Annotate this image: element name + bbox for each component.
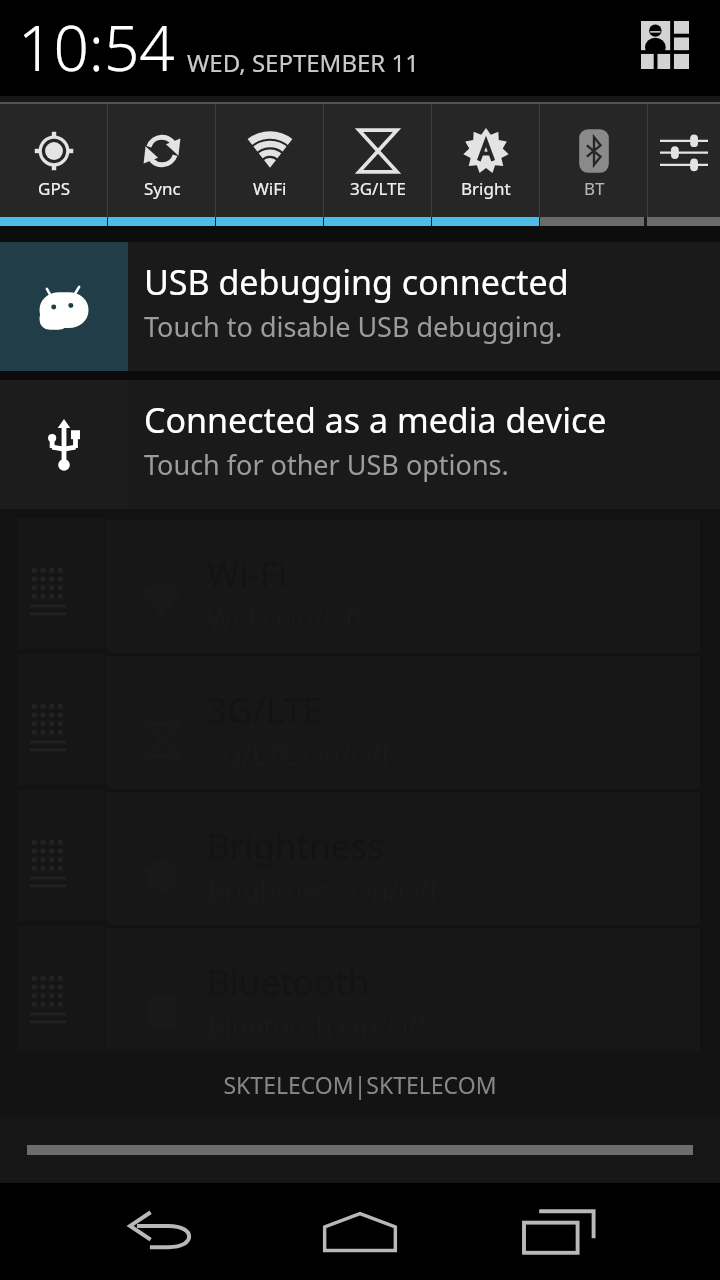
staticText: SKTELECOM|SKTELECOM [223,1069,497,1100]
staticText: Bright [461,177,511,200]
staticText: USB debugging connected [144,259,569,305]
button[interactable]: Connected as a media device [0,380,720,509]
staticText: WiFi [253,177,287,200]
button[interactable]: WiFi [216,104,324,217]
button[interactable]: Settings [648,104,720,217]
button[interactable]: GPS [0,104,108,217]
button[interactable]: USB debugging connected [0,242,720,371]
button[interactable]: Bright [432,104,540,217]
button[interactable]: Home [310,1183,410,1280]
staticText: Touch for other USB options. [144,446,509,483]
button[interactable]: Sync [108,104,216,217]
staticText: BT [584,177,605,200]
staticText: 3G/LTE [350,177,406,200]
button[interactable]: Drag handle [0,1117,720,1183]
button[interactable]: 3G/LTE [324,104,432,217]
staticText: WED, SEPTEMBER 11 [187,46,419,79]
staticText: GPS [38,177,70,200]
button[interactable]: User profile [634,14,696,76]
button[interactable]: Recent apps [510,1183,610,1280]
staticText: Connected as a media device [144,397,607,443]
button[interactable]: Back [110,1183,210,1280]
staticText: 10:54 [18,5,175,89]
staticText: Touch to disable USB debugging. [144,308,563,345]
staticText: Sync [144,177,181,200]
button[interactable]: BT [540,104,648,217]
